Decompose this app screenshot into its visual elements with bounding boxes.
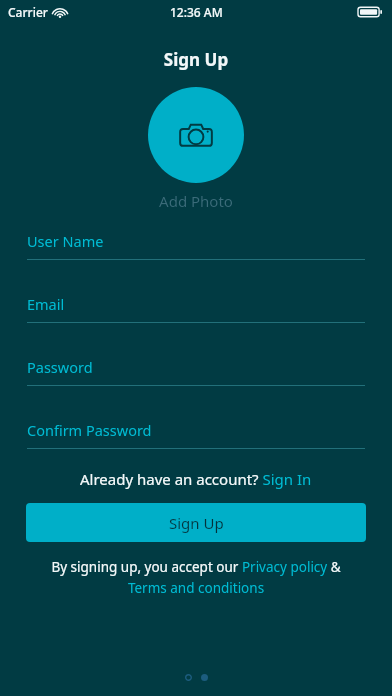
button[interactable]: Add Photo	[159, 191, 233, 211]
button[interactable]: Add Photo	[148, 87, 244, 183]
staticText: Email	[27, 294, 65, 314]
button[interactable]: Confirm Password	[27, 420, 365, 449]
button[interactable]: Email	[27, 294, 365, 323]
button[interactable]: User Name	[27, 231, 365, 260]
staticText: Sign Up	[0, 48, 392, 71]
staticText: Confirm Password	[27, 420, 152, 440]
staticText: Password	[27, 357, 93, 377]
button[interactable]: Sign Up	[26, 503, 366, 542]
staticText: Already have an account? Sign In	[80, 469, 312, 489]
staticText: Sign Up	[169, 513, 224, 533]
staticText: Carrier	[8, 4, 48, 20]
button[interactable]: By signing up, you accept our Privacy po…	[24, 558, 368, 597]
button[interactable]: Already have an account? Sign In	[0, 469, 392, 489]
staticText: User Name	[27, 231, 104, 251]
staticText: 12:36 AM	[170, 4, 223, 20]
button[interactable]: Password	[27, 357, 365, 386]
